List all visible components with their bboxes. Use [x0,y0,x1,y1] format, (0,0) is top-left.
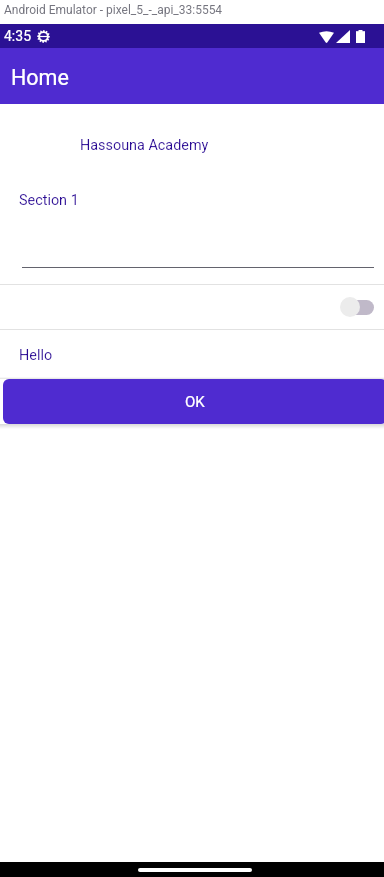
staticText: Home [11,65,69,90]
staticText: OK [185,393,205,411]
staticText: Android Emulator - pixel_5_-_api_33:5554 [4,3,223,17]
button[interactable]: OK [3,379,384,424]
staticText: 4:35 [4,28,31,44]
other: Settings [37,30,50,43]
button[interactable]: Toggle [0,285,384,329]
staticText: Hello [19,347,53,364]
staticText: Hassouna Academy [80,137,209,154]
staticText: Section 1 [19,192,79,209]
button[interactable] [0,267,384,269]
